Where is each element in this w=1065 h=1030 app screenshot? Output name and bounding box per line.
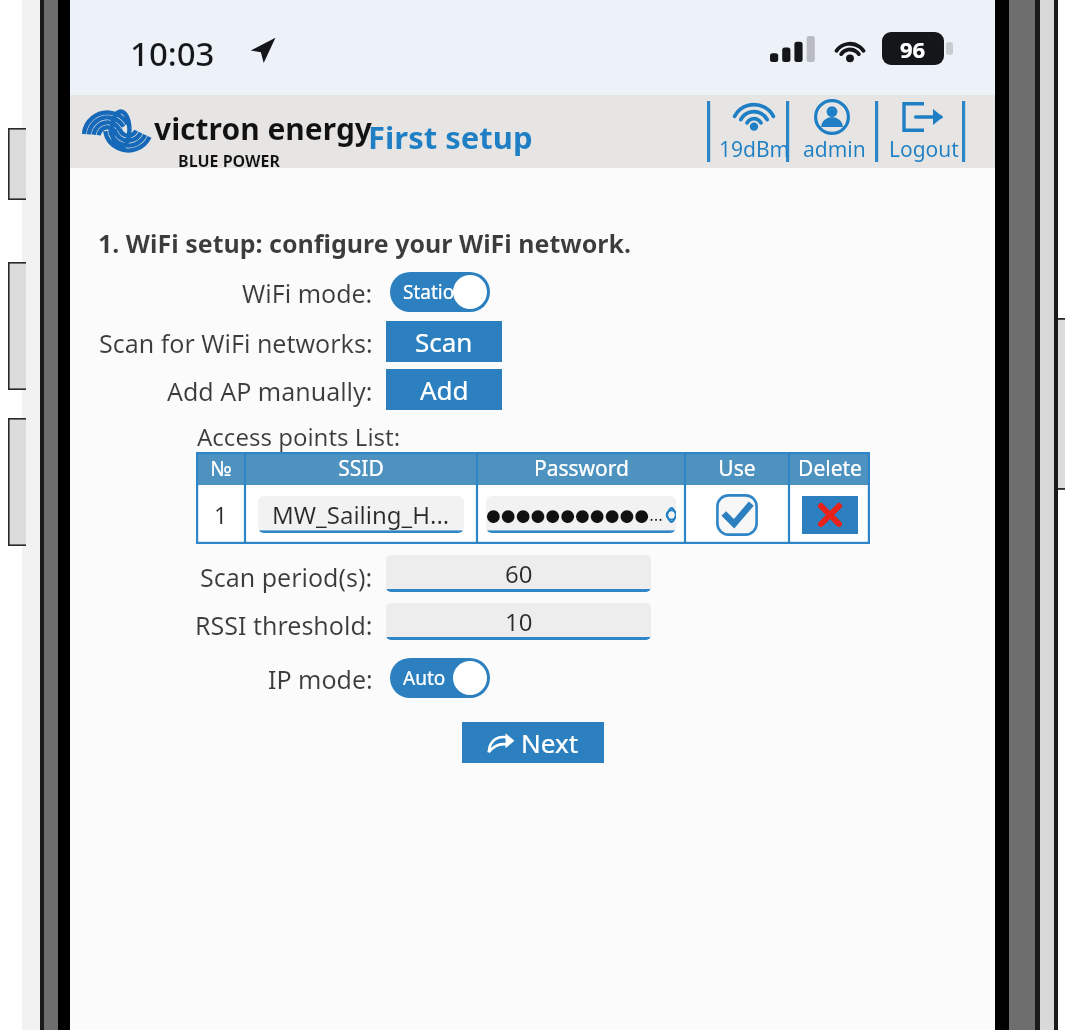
staticText: Access points List: bbox=[197, 420, 401, 453]
button[interactable]: Logout bbox=[888, 99, 960, 165]
staticText: Scan bbox=[415, 324, 473, 359]
staticText: WiFi mode: bbox=[242, 276, 373, 310]
staticText: ●●●●●●●●●●●... bbox=[486, 503, 663, 526]
staticText: Password bbox=[534, 454, 629, 483]
staticText: 10:03 bbox=[130, 31, 215, 76]
staticText: № bbox=[210, 454, 232, 483]
staticText: Delete bbox=[798, 454, 862, 483]
other: Show password bbox=[667, 507, 676, 523]
staticText: 19dBm bbox=[719, 135, 790, 164]
button[interactable]: Next bbox=[462, 722, 604, 763]
staticText: SSID bbox=[338, 454, 384, 483]
button[interactable]: 10 bbox=[386, 603, 651, 640]
button[interactable]: Scan bbox=[386, 321, 502, 362]
staticText: First setup bbox=[368, 116, 533, 158]
staticText: 60 bbox=[505, 557, 533, 590]
staticText: Scan period(s): bbox=[200, 560, 373, 594]
button[interactable]: Add bbox=[386, 369, 502, 410]
staticText: 1. WiFi setup: configure your WiFi netwo… bbox=[98, 226, 632, 260]
staticText: Use bbox=[718, 454, 756, 483]
staticText: Logout bbox=[889, 135, 959, 164]
button[interactable]: Account admin bbox=[798, 99, 870, 165]
staticText: admin bbox=[803, 135, 866, 164]
staticText: 96 bbox=[900, 34, 926, 64]
button[interactable]: 60 bbox=[386, 555, 651, 592]
button[interactable]: Station bbox=[390, 272, 490, 312]
staticText: Station bbox=[403, 279, 466, 305]
button[interactable]: WiFi signal strength bbox=[718, 99, 790, 165]
button[interactable]: Delete access point bbox=[802, 496, 858, 534]
staticText: Scan for WiFi networks: bbox=[99, 326, 373, 360]
staticText: Next bbox=[521, 725, 579, 760]
button[interactable]: Use this access point bbox=[716, 494, 758, 536]
staticText: Auto bbox=[403, 665, 446, 691]
staticText: 10 bbox=[505, 605, 533, 638]
staticText: IP mode: bbox=[268, 662, 373, 696]
staticText: BLUE POWER bbox=[178, 150, 281, 172]
button[interactable]: Auto bbox=[390, 658, 490, 698]
staticText: Add AP manually: bbox=[167, 374, 373, 408]
button[interactable]: ●●●●●●●●●●●... bbox=[486, 496, 676, 533]
staticText: victron energy bbox=[154, 108, 372, 149]
staticText: Add bbox=[420, 372, 469, 407]
staticText: 1 bbox=[214, 499, 228, 530]
button[interactable]: MW_Sailing_H... bbox=[258, 496, 464, 533]
staticText: MW_Sailing_H... bbox=[272, 498, 450, 531]
staticText: RSSI threshold: bbox=[195, 608, 373, 642]
